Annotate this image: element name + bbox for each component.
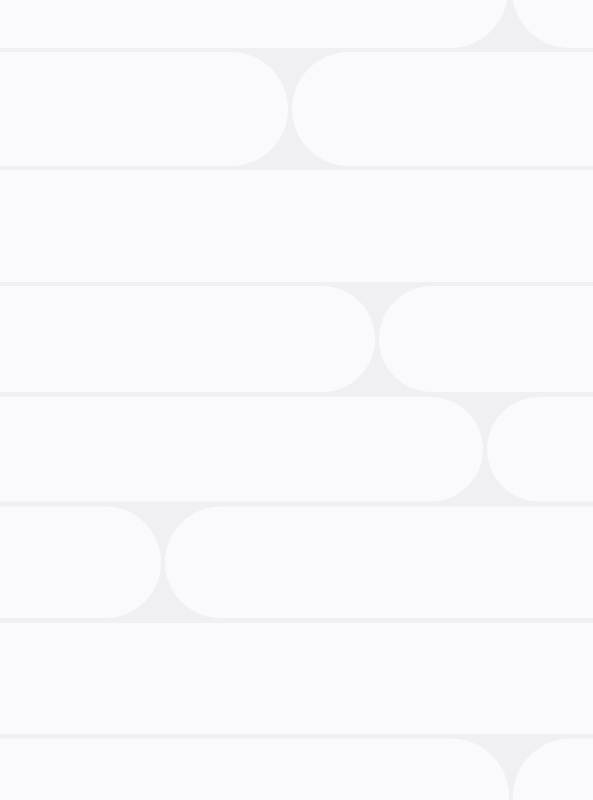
button[interactable]: Loading row	[0, 0, 593, 800]
button[interactable]: Loading row	[0, 0, 593, 800]
button[interactable]: Loading row	[0, 0, 593, 800]
button[interactable]: Loading row	[0, 0, 593, 800]
button[interactable]: Loading row	[0, 0, 593, 800]
button[interactable]: Loading row	[0, 0, 593, 800]
button[interactable]: Loading row	[0, 0, 593, 800]
button[interactable]: Loading row	[0, 0, 593, 800]
